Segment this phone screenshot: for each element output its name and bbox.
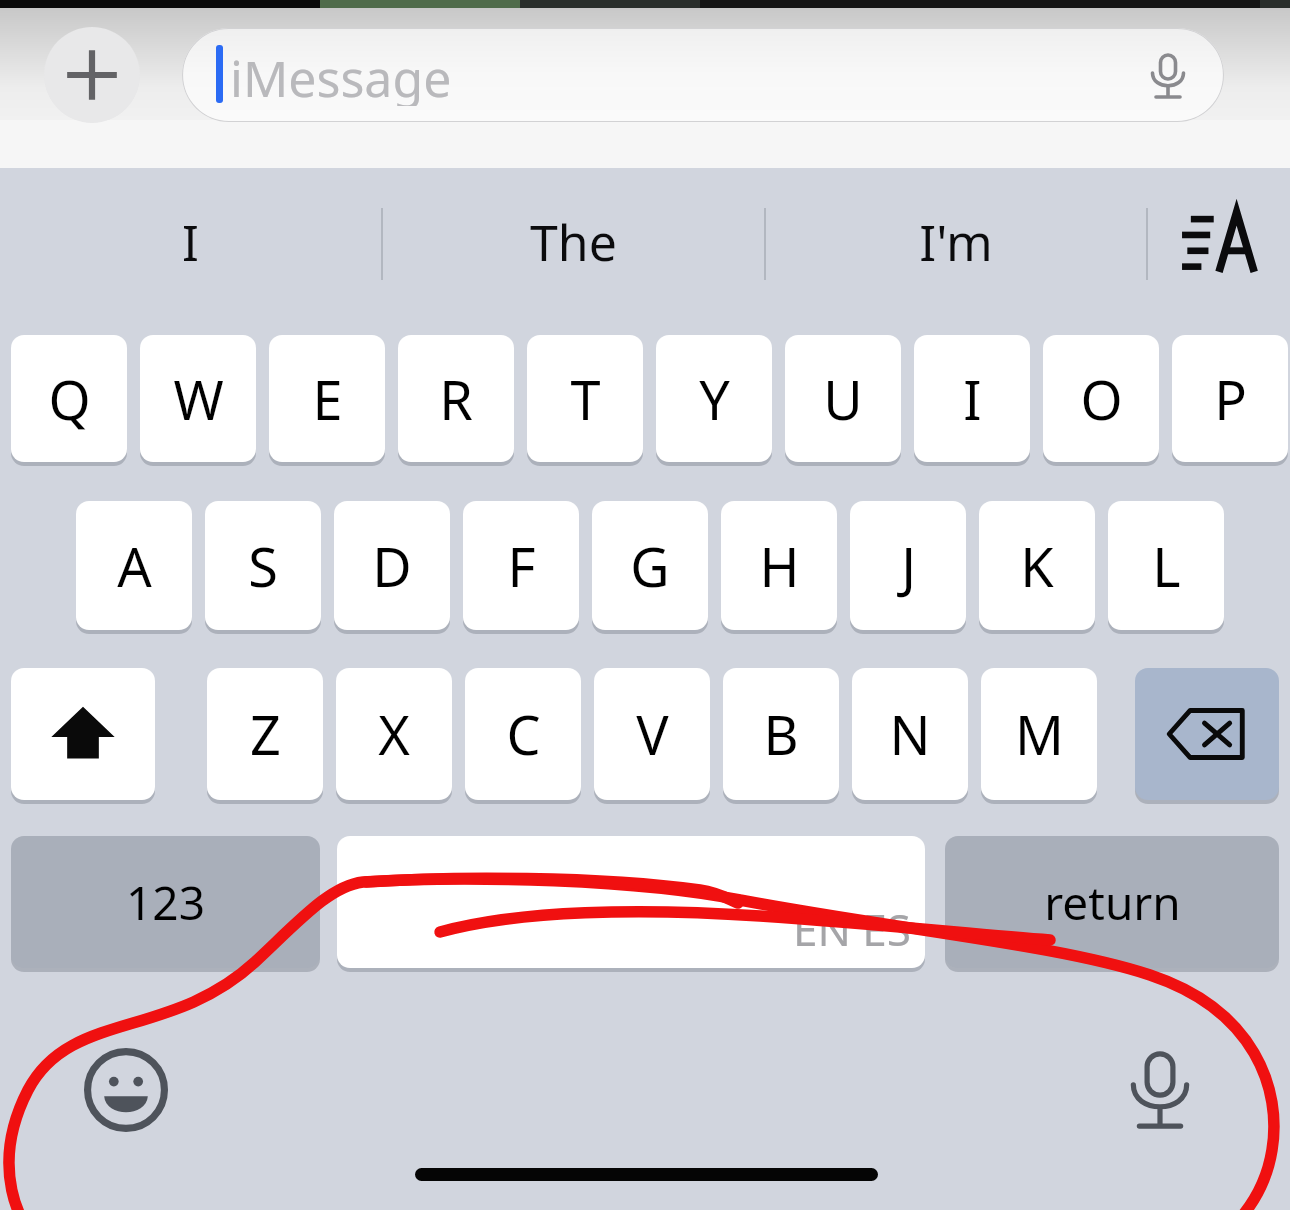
- button[interactable]: L: [1108, 501, 1224, 630]
- staticText: E: [312, 362, 343, 436]
- staticText: The: [530, 208, 617, 276]
- button[interactable]: Dictation: [1108, 1038, 1212, 1142]
- staticText: M: [1015, 697, 1064, 771]
- button[interactable]: Backspace: [1135, 668, 1279, 800]
- staticText: N: [889, 697, 931, 771]
- staticText: H: [759, 529, 800, 603]
- staticText: R: [439, 362, 473, 436]
- button[interactable]: G: [592, 501, 708, 630]
- staticText: A: [117, 529, 152, 603]
- button[interactable]: Add attachment: [44, 27, 140, 123]
- staticText: L: [1152, 529, 1181, 603]
- staticText: X: [378, 697, 410, 771]
- staticText: I'm: [919, 208, 993, 276]
- button[interactable]: N: [852, 668, 968, 800]
- staticText: V: [636, 697, 669, 771]
- staticText: D: [372, 529, 412, 603]
- button[interactable]: The: [383, 168, 764, 316]
- staticText: 123: [126, 871, 205, 934]
- staticText: I: [182, 208, 199, 276]
- staticText: return: [1044, 871, 1181, 934]
- staticText: T: [570, 362, 601, 436]
- button[interactable]: Q: [11, 335, 127, 462]
- button[interactable]: R: [398, 335, 514, 462]
- button[interactable]: Dictate: [1124, 32, 1212, 120]
- button[interactable]: Space: [337, 836, 925, 968]
- button[interactable]: W: [140, 335, 256, 462]
- button[interactable]: [182, 28, 1224, 122]
- button[interactable]: I: [0, 168, 381, 316]
- staticText: G: [630, 529, 670, 603]
- button[interactable]: 123: [11, 836, 320, 968]
- staticText: Z: [250, 697, 281, 771]
- staticText: C: [506, 697, 541, 771]
- staticText: iMessage: [230, 44, 452, 106]
- staticText: Y: [699, 362, 730, 436]
- staticText: EN ES: [793, 899, 911, 959]
- button[interactable]: K: [979, 501, 1095, 630]
- staticText: O: [1080, 362, 1123, 436]
- button[interactable]: E: [269, 335, 385, 462]
- button[interactable]: F: [463, 501, 579, 630]
- staticText: S: [248, 529, 278, 603]
- button[interactable]: J: [850, 501, 966, 630]
- button[interactable]: U: [785, 335, 901, 462]
- staticText: J: [901, 529, 916, 603]
- button[interactable]: B: [723, 668, 839, 800]
- button[interactable]: O: [1043, 335, 1159, 462]
- button[interactable]: M: [981, 668, 1097, 800]
- button[interactable]: S: [205, 501, 321, 630]
- staticText: I: [963, 362, 982, 436]
- button[interactable]: Text formatting: [1148, 168, 1290, 316]
- button[interactable]: I: [914, 335, 1030, 462]
- button[interactable]: D: [334, 501, 450, 630]
- button[interactable]: P: [1172, 335, 1288, 462]
- button[interactable]: I'm: [766, 168, 1146, 316]
- button[interactable]: V: [594, 668, 710, 800]
- button[interactable]: T: [527, 335, 643, 462]
- button[interactable]: Emoji: [74, 1038, 178, 1142]
- button[interactable]: A: [76, 501, 192, 630]
- button[interactable]: Z: [207, 668, 323, 800]
- staticText: B: [763, 697, 799, 771]
- button[interactable]: Y: [656, 335, 772, 462]
- button[interactable]: Shift: [11, 668, 155, 800]
- staticText: F: [507, 529, 536, 603]
- staticText: K: [1020, 529, 1054, 603]
- staticText: U: [823, 362, 863, 436]
- button[interactable]: X: [336, 668, 452, 800]
- staticText: Q: [48, 362, 91, 436]
- button[interactable]: C: [465, 668, 581, 800]
- button[interactable]: return: [945, 836, 1279, 968]
- button[interactable]: H: [721, 501, 837, 630]
- staticText: W: [173, 362, 224, 436]
- staticText: P: [1214, 362, 1247, 436]
